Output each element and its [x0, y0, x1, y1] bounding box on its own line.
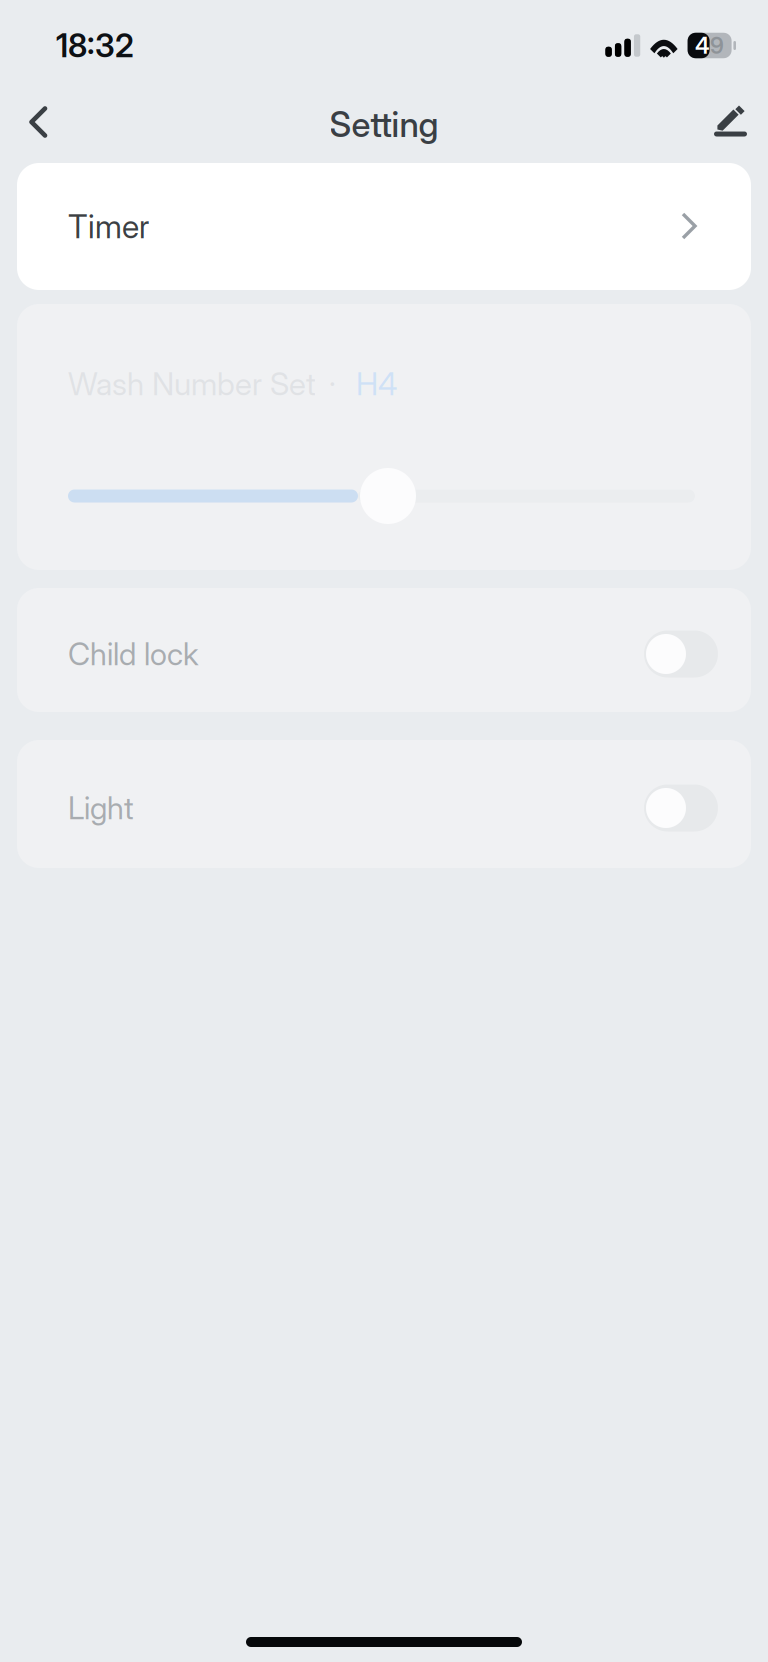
staticText: 9: [710, 32, 724, 59]
staticText: Wash Number Set: [68, 365, 316, 403]
staticText: 18:32: [56, 26, 134, 65]
staticText: Child lock: [68, 635, 199, 672]
button[interactable]: Light: [17, 740, 751, 868]
button[interactable]: Child lock: [17, 588, 751, 712]
staticText: Timer: [68, 207, 149, 246]
staticText: 4: [695, 32, 710, 59]
staticText: H4: [356, 365, 397, 403]
staticText: Light: [68, 789, 134, 826]
staticText: Setting: [329, 103, 438, 145]
button[interactable]: Timer: [17, 163, 751, 290]
button[interactable]: Back: [9, 96, 67, 158]
button[interactable]: Edit: [704, 95, 757, 158]
